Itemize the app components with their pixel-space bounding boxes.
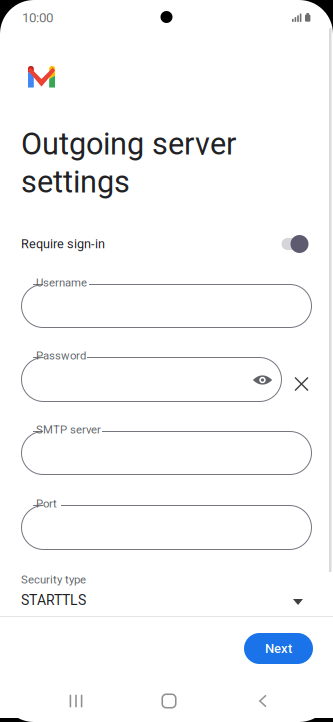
staticText: Require sign-in: [21, 237, 105, 251]
staticText: Password: [36, 349, 86, 362]
staticText: Port: [36, 497, 57, 510]
button[interactable]: Require sign-in: [0, 227, 333, 261]
staticText: 10:00: [22, 10, 53, 26]
button[interactable]: Next: [244, 633, 313, 664]
staticText: settings: [21, 164, 130, 200]
staticText: STARTTLS: [21, 592, 86, 608]
button[interactable]: Security type: [0, 572, 333, 616]
button[interactable]: Show password: [249, 370, 275, 390]
staticText: Outgoing server: [21, 126, 236, 162]
staticText: Username: [36, 276, 87, 289]
button[interactable]: Recent apps: [50, 684, 102, 718]
button[interactable]: Clear password: [288, 371, 314, 397]
staticText: Security type: [21, 573, 86, 586]
button[interactable]: Back: [237, 684, 289, 718]
button[interactable]: Home: [143, 684, 195, 718]
staticText: Next: [265, 641, 292, 656]
staticText: SMTP server: [36, 423, 101, 436]
